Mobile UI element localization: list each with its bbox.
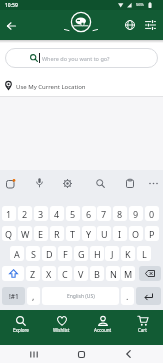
button[interactable]: 1	[2, 206, 16, 221]
staticText: U	[101, 228, 108, 240]
button[interactable]: F	[58, 246, 72, 261]
button[interactable]: T	[66, 226, 80, 241]
staticText: E	[38, 228, 44, 240]
button[interactable]	[71, 347, 91, 361]
button[interactable]: K	[121, 246, 135, 261]
button[interactable]: L	[137, 246, 151, 261]
staticText: P	[149, 228, 155, 240]
staticText: D	[46, 248, 53, 260]
staticText: Where do you want to go?	[42, 55, 110, 62]
button[interactable]: 3	[34, 206, 48, 221]
staticText: .	[126, 290, 129, 302]
staticText: V	[78, 268, 84, 280]
button[interactable]: 6	[82, 206, 96, 221]
button[interactable]: 4	[50, 206, 64, 221]
button[interactable]	[142, 17, 158, 33]
staticText: Q	[5, 228, 13, 240]
staticText: G	[78, 248, 85, 260]
staticText: 4	[54, 208, 60, 220]
button[interactable]	[118, 347, 138, 361]
staticText: C	[62, 268, 68, 280]
button[interactable]: 0	[145, 206, 159, 221]
button[interactable]	[59, 175, 75, 191]
button[interactable]: !#1	[2, 287, 25, 305]
button[interactable]: N	[106, 266, 120, 281]
staticText: 7	[101, 208, 107, 220]
button[interactable]	[122, 17, 138, 33]
button[interactable]: O	[129, 226, 143, 241]
button[interactable]: 8	[113, 206, 127, 221]
button[interactable]: 5	[66, 206, 80, 221]
button[interactable]: U	[97, 226, 111, 241]
staticText: Use My Current Location	[16, 83, 86, 91]
staticText: 10:59	[5, 2, 18, 9]
staticText: M	[124, 268, 133, 280]
staticText: O	[132, 228, 140, 240]
staticText: A	[14, 248, 20, 260]
button[interactable]	[92, 175, 108, 191]
button[interactable]: ,	[27, 287, 40, 305]
staticText: Cart	[138, 327, 147, 333]
button[interactable]: R	[50, 226, 64, 241]
button[interactable]: I	[113, 226, 127, 241]
button[interactable]: Where do you want to go?	[5, 48, 158, 68]
staticText: ,	[32, 290, 35, 302]
button[interactable]	[145, 175, 161, 191]
staticText: 6	[86, 208, 92, 220]
staticText: K	[125, 248, 131, 260]
button[interactable]: A	[10, 246, 24, 261]
staticText: Account	[94, 327, 112, 333]
button[interactable]	[122, 175, 138, 191]
staticText: T	[70, 228, 76, 240]
button[interactable]: V	[74, 266, 88, 281]
button[interactable]	[136, 287, 161, 305]
button[interactable]: B	[90, 266, 104, 281]
button[interactable]: C	[58, 266, 72, 281]
button[interactable]: 9	[129, 206, 143, 221]
button[interactable]: 7	[97, 206, 111, 221]
button[interactable]	[2, 175, 18, 191]
button[interactable]: 2	[18, 206, 32, 221]
button[interactable]: M	[121, 266, 135, 281]
button[interactable]: Z	[26, 266, 40, 281]
button[interactable]: .	[121, 287, 134, 305]
button[interactable]: Wishlist	[41, 310, 82, 345]
button[interactable]: P	[145, 226, 159, 241]
staticText: 56%	[136, 2, 144, 7]
staticText: F	[63, 248, 68, 260]
staticText: English (US)	[67, 293, 95, 300]
staticText: X	[46, 268, 52, 280]
button[interactable]: J	[105, 246, 119, 261]
staticText: 2	[22, 208, 28, 220]
button[interactable]: Explore	[0, 310, 41, 345]
staticText: L	[142, 248, 147, 260]
button[interactable]: D	[42, 246, 56, 261]
button[interactable]: G	[74, 246, 88, 261]
button[interactable]: Use My Current Location	[0, 76, 163, 96]
button[interactable]: Y	[82, 226, 96, 241]
staticText: Y	[86, 228, 92, 240]
button[interactable]: X	[42, 266, 56, 281]
button[interactable]	[139, 266, 161, 281]
button[interactable]: W	[18, 226, 32, 241]
staticText: !#1	[9, 292, 19, 301]
button[interactable]: Q	[2, 226, 16, 241]
button[interactable]: E	[34, 226, 48, 241]
staticText: Z	[30, 268, 36, 280]
staticText: Explore	[13, 327, 29, 333]
staticText: 0	[149, 208, 155, 220]
button[interactable]: English (US)	[42, 287, 119, 305]
button[interactable]: Account	[82, 310, 123, 345]
button[interactable]	[2, 266, 24, 281]
button[interactable]	[24, 347, 44, 361]
button[interactable]	[2, 18, 20, 34]
button[interactable]: S	[26, 246, 40, 261]
staticText: 5	[70, 208, 76, 220]
staticText: H	[94, 248, 101, 260]
staticText: R	[54, 228, 60, 240]
button[interactable]: H	[90, 246, 104, 261]
staticText: J	[111, 248, 114, 260]
button[interactable]	[31, 175, 47, 191]
button[interactable]: Cart	[122, 310, 163, 345]
staticText: 8	[117, 208, 123, 220]
